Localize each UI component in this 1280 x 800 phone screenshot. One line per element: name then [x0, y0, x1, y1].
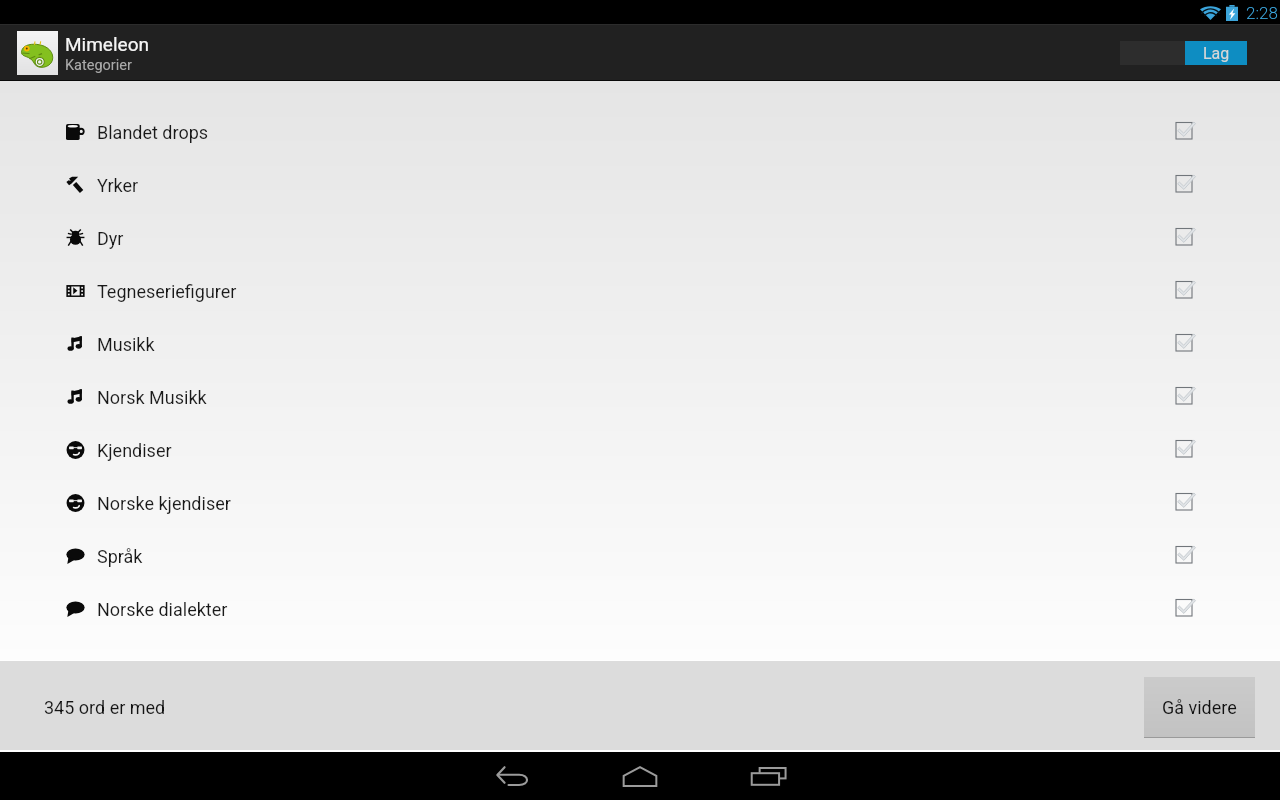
button[interactable]: Musikk: [0, 318, 1280, 371]
button[interactable]: Recent apps: [734, 754, 804, 798]
staticText: Norske dialekter: [97, 599, 228, 620]
staticText: Musikk: [97, 334, 155, 355]
button[interactable]: Lag: [1185, 41, 1247, 65]
button[interactable]: Blandet drops: [0, 106, 1280, 159]
button[interactable]: Back: [477, 754, 547, 798]
button[interactable]: Kjendiser: [0, 424, 1280, 477]
button[interactable]: Mimeleon – Kategorier: [10, 24, 210, 81]
staticText: 345 ord er med: [44, 697, 166, 718]
staticText: Kategorier: [65, 57, 132, 74]
staticText: Yrker: [97, 175, 139, 196]
staticText: Gå videre: [1162, 697, 1237, 718]
staticText: Norske kjendiser: [97, 493, 231, 514]
staticText: Norsk Musikk: [97, 387, 207, 408]
staticText: Dyr: [97, 228, 124, 249]
staticText: Mimeleon: [65, 33, 149, 55]
staticText: Blandet drops: [97, 122, 209, 143]
button[interactable]: Home: [605, 754, 675, 798]
staticText: Lag: [1203, 44, 1230, 63]
button[interactable]: Yrker: [0, 159, 1280, 212]
button[interactable]: Norsk Musikk: [0, 371, 1280, 424]
button[interactable]: Norske kjendiser: [0, 477, 1280, 530]
staticText: Språk: [97, 546, 143, 567]
staticText: Tegneseriefigurer: [97, 281, 237, 302]
button[interactable]: Tegneseriefigurer: [0, 265, 1280, 318]
button[interactable]: Språk: [0, 530, 1280, 583]
button[interactable]: Norske dialekter: [0, 583, 1280, 636]
button[interactable]: Gå videre: [1144, 677, 1255, 738]
staticText: 2:28: [1246, 3, 1278, 23]
button[interactable]: Dyr: [0, 212, 1280, 265]
staticText: Kjendiser: [97, 440, 172, 461]
